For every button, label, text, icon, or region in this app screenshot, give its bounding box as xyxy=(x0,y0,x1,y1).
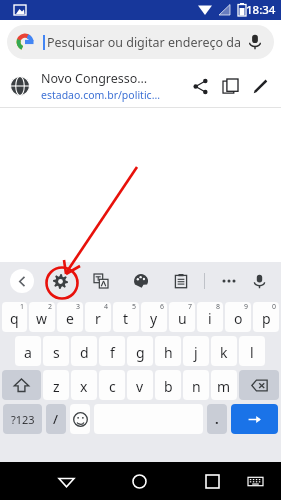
staticText: j xyxy=(194,343,198,362)
button[interactable]: p xyxy=(253,302,279,332)
staticText: Pesquisar ou digitar endereço da W xyxy=(47,34,241,51)
staticText: estadao.com.br/politic… xyxy=(41,88,160,102)
staticText: . xyxy=(215,410,219,428)
button[interactable]: Novo Congresso… xyxy=(0,64,281,107)
staticText: 4 xyxy=(104,302,109,312)
button[interactable]: l xyxy=(239,336,265,366)
button[interactable]: Voice search xyxy=(245,32,265,52)
staticText: 8 xyxy=(216,302,221,312)
staticText: 5 xyxy=(132,302,137,312)
button[interactable]: ?123 xyxy=(3,404,42,434)
button[interactable]: Key xyxy=(239,370,279,400)
button[interactable]: x xyxy=(71,370,97,400)
staticText: / xyxy=(53,410,59,428)
button[interactable]: c xyxy=(99,370,125,400)
staticText: n xyxy=(192,377,201,396)
button[interactable]: q xyxy=(2,302,27,332)
staticText: f xyxy=(110,343,115,362)
button[interactable]: b xyxy=(155,370,181,400)
button[interactable]: i xyxy=(197,302,223,332)
staticText: 7 xyxy=(188,302,193,312)
button[interactable]: e xyxy=(57,302,83,332)
button[interactable]: Key xyxy=(2,370,41,400)
button[interactable]: Back xyxy=(10,269,34,293)
staticText: z xyxy=(53,377,60,396)
staticText: l xyxy=(250,343,254,362)
staticText: u xyxy=(178,309,187,328)
staticText: i xyxy=(208,309,212,328)
button[interactable]: More options xyxy=(216,268,242,294)
button[interactable]: z xyxy=(43,370,69,400)
button[interactable]: w xyxy=(29,302,55,332)
staticText: a xyxy=(24,343,32,362)
staticText: g xyxy=(136,343,145,362)
button[interactable]: s xyxy=(43,336,69,366)
button[interactable]: a xyxy=(15,336,41,366)
button[interactable]: Settings xyxy=(47,268,73,294)
button[interactable]: . xyxy=(207,404,227,434)
button[interactable]: d xyxy=(71,336,97,366)
button[interactable]: Edit xyxy=(245,71,275,101)
staticText: c xyxy=(109,377,116,396)
button[interactable]: o xyxy=(225,302,251,332)
staticText: x xyxy=(80,377,88,396)
staticText: 2 xyxy=(48,302,53,312)
button[interactable]: t xyxy=(113,302,139,332)
staticText: Novo Congresso… xyxy=(41,70,148,87)
button[interactable]: Back xyxy=(51,466,81,496)
button[interactable]: Voice input xyxy=(246,268,272,294)
staticText: 3 xyxy=(76,302,81,312)
button[interactable]: h xyxy=(155,336,181,366)
staticText: o xyxy=(234,309,243,328)
staticText: 0 xyxy=(272,302,277,312)
staticText: ?123 xyxy=(11,412,35,427)
button[interactable]: Share xyxy=(185,71,215,101)
button[interactable]: Copy xyxy=(215,71,245,101)
button[interactable]: v xyxy=(127,370,153,400)
button[interactable]: n xyxy=(183,370,209,400)
staticText: v xyxy=(136,377,144,396)
staticText: 9 xyxy=(244,302,249,312)
staticText: p xyxy=(262,309,271,328)
button[interactable]: Themes xyxy=(128,268,154,294)
button[interactable]: / xyxy=(46,404,66,434)
button[interactable]: Home xyxy=(124,466,154,496)
button[interactable]: k xyxy=(211,336,237,366)
button[interactable]: Translate xyxy=(88,268,114,294)
staticText: 18:34 xyxy=(246,2,276,18)
button[interactable]: Clipboard xyxy=(168,268,194,294)
button[interactable]: g xyxy=(127,336,153,366)
button[interactable]: Pesquisar ou digitar endereço da W xyxy=(7,25,274,59)
button[interactable]: Hide keyboard xyxy=(242,468,268,494)
staticText: s xyxy=(53,343,60,362)
button[interactable]: f xyxy=(99,336,125,366)
button[interactable]: u xyxy=(169,302,195,332)
button[interactable]: Enter xyxy=(231,404,278,434)
button[interactable]: j xyxy=(183,336,209,366)
staticText: d xyxy=(80,343,89,362)
staticText: y xyxy=(150,309,158,328)
button[interactable]: Emoji xyxy=(70,404,90,434)
staticText: t xyxy=(123,309,129,328)
staticText: h xyxy=(164,343,173,362)
button[interactable]: r xyxy=(85,302,111,332)
staticText: e xyxy=(66,309,74,328)
button[interactable]: m xyxy=(211,370,237,400)
button[interactable]: Recents xyxy=(197,466,227,496)
staticText: 6 xyxy=(160,302,165,312)
staticText: 1 xyxy=(20,302,25,312)
staticText: b xyxy=(164,377,173,396)
staticText: w xyxy=(36,309,48,328)
staticText: k xyxy=(220,343,228,362)
staticText: m xyxy=(217,377,231,396)
staticText: r xyxy=(95,309,101,328)
button[interactable]: y xyxy=(141,302,167,332)
staticText: q xyxy=(10,309,19,328)
